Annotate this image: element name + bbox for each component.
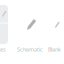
button[interactable] (0, 5, 8, 44)
button[interactable] (44, 5, 64, 44)
staticText: Blank (48, 46, 61, 53)
staticText: Schematic (17, 46, 43, 53)
button[interactable] (18, 5, 42, 44)
staticText: Notes (0, 46, 6, 53)
